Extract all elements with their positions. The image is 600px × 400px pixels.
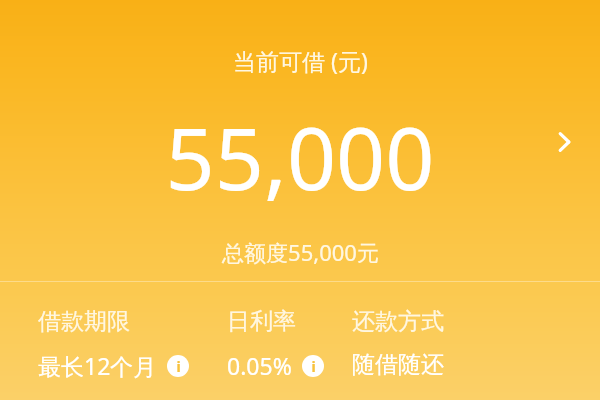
staticText: i (176, 357, 181, 376)
button[interactable]: Daily interest rate information (302, 355, 324, 377)
staticText: 总额度55,000元 (222, 237, 379, 267)
staticText: 还款方式 (352, 307, 444, 336)
button[interactable]: 日利率 (227, 307, 324, 381)
staticText: 当前可借 (元) (233, 45, 368, 76)
staticText: 0.05% (227, 350, 292, 381)
button[interactable]: 借款期限 (38, 307, 189, 381)
staticText: 55,000 (165, 98, 435, 215)
staticText: 日利率 (227, 307, 296, 336)
staticText: 最长12个月 (38, 350, 157, 381)
button[interactable]: Loan term information (167, 355, 189, 377)
button[interactable]: 当前可借 (元) (0, 0, 600, 281)
staticText: i (311, 357, 316, 376)
button[interactable]: 还款方式 (352, 307, 444, 379)
staticText: 借款期限 (38, 307, 130, 336)
other: View loan details (553, 127, 577, 157)
staticText: 随借随还 (352, 350, 444, 379)
